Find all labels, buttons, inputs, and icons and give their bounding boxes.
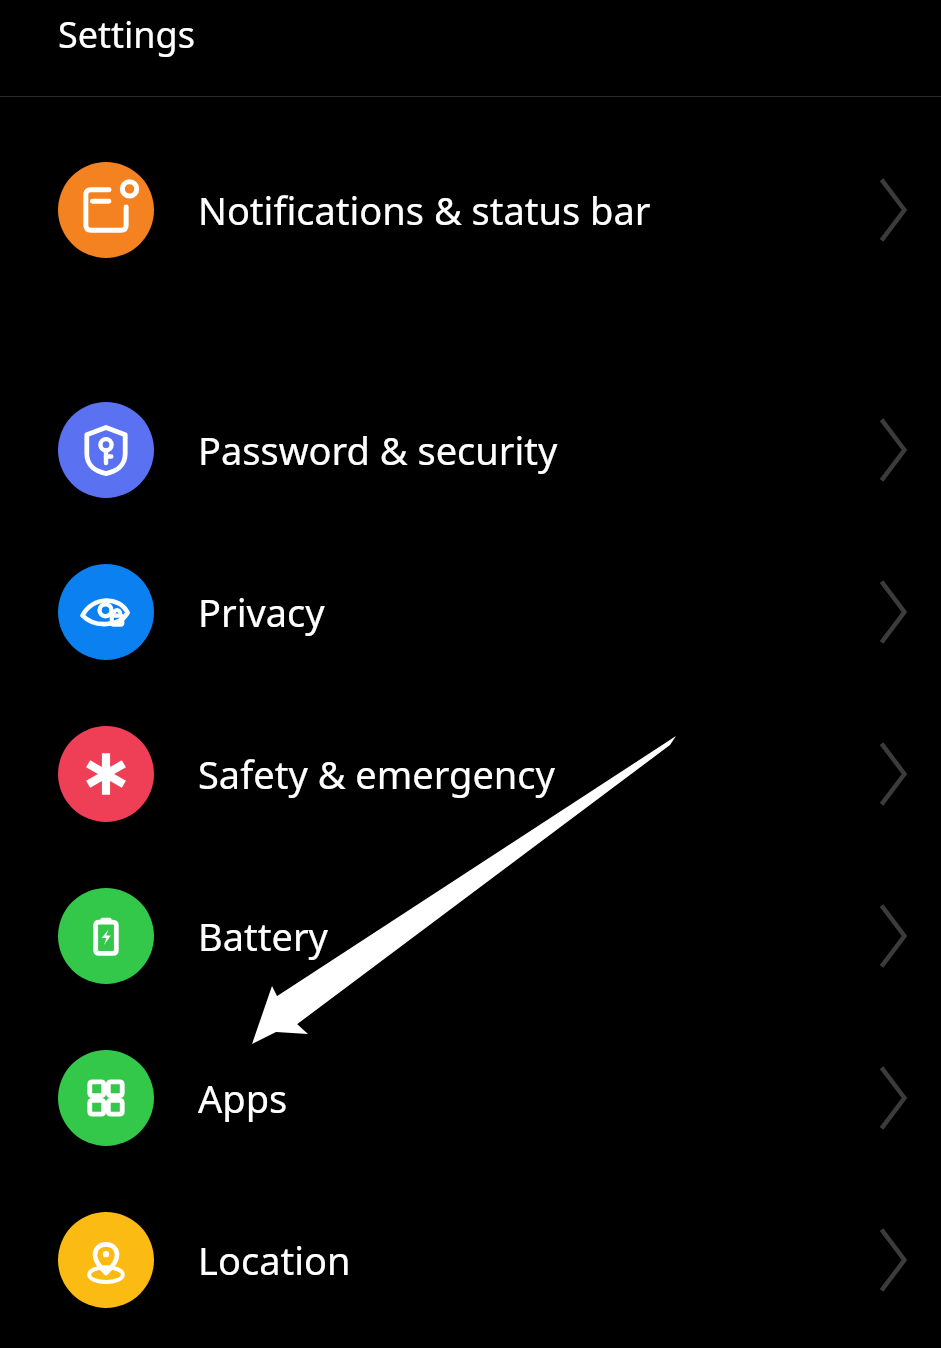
button[interactable]: Safety & emergency xyxy=(0,725,941,822)
button[interactable]: Battery xyxy=(0,887,941,984)
staticText: Apps xyxy=(198,1072,863,1124)
staticText: Safety & emergency xyxy=(198,748,863,800)
staticText: Password & security xyxy=(198,424,863,476)
button[interactable]: Privacy xyxy=(0,563,941,660)
staticText: Location xyxy=(198,1234,863,1286)
staticText: Battery xyxy=(198,910,863,962)
button[interactable]: Notifications & status bar xyxy=(0,161,941,258)
staticText: Privacy xyxy=(198,586,863,638)
button[interactable]: Password & security xyxy=(0,401,941,498)
staticText: Notifications & status bar xyxy=(198,184,863,236)
staticText: Settings xyxy=(58,10,195,59)
button[interactable]: Apps xyxy=(0,1049,941,1146)
button[interactable]: Location xyxy=(0,1211,941,1308)
